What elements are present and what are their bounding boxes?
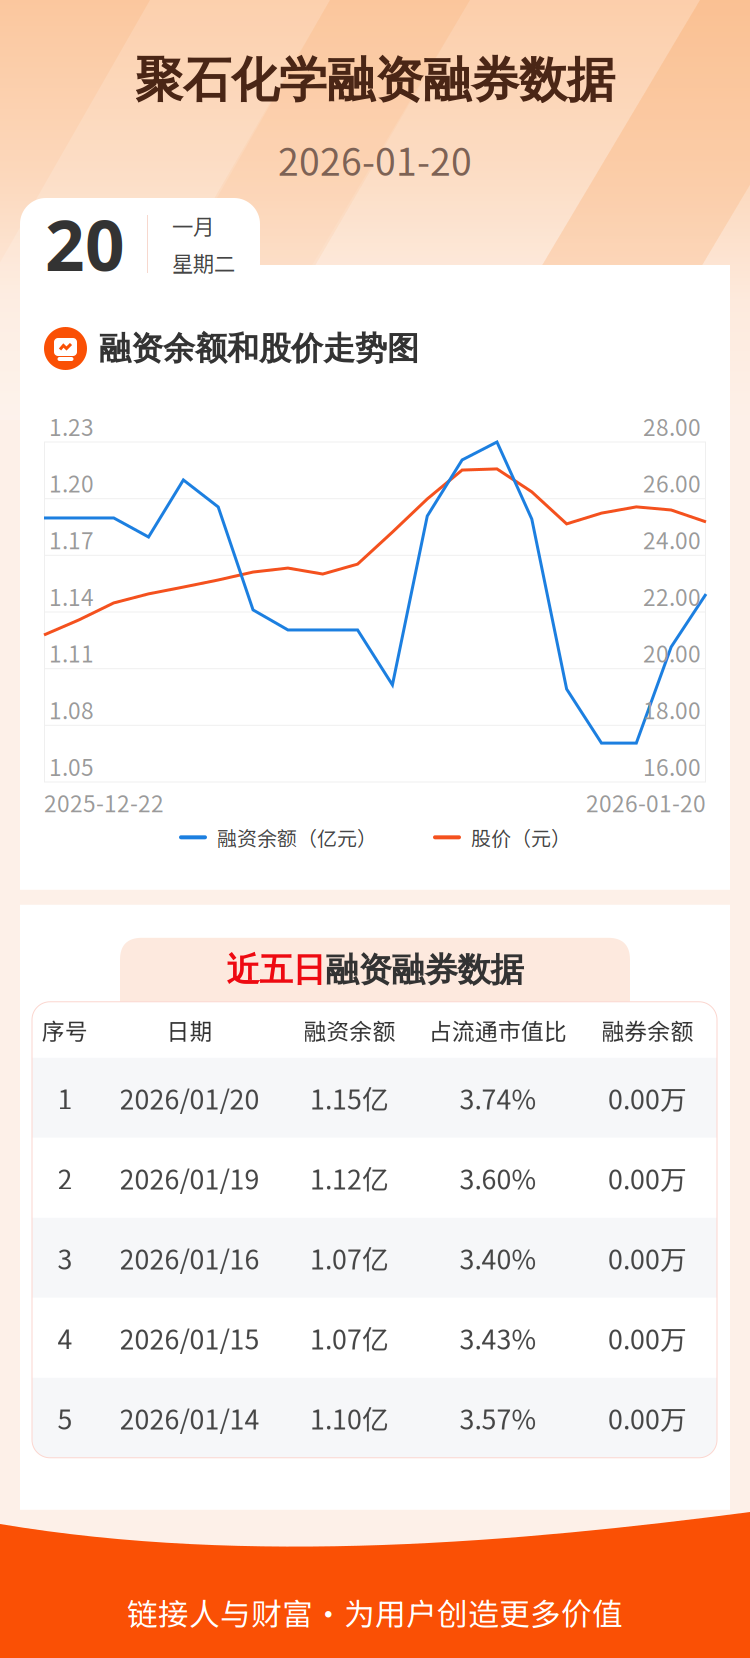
staticText: 3.40% bbox=[459, 1238, 536, 1277]
staticText: 28.00 bbox=[643, 410, 701, 442]
staticText: 日期 bbox=[166, 1013, 212, 1046]
staticText: 4 bbox=[57, 1318, 72, 1357]
staticText: 序号 bbox=[42, 1013, 88, 1046]
staticText: 聚石化学融资融券数据 bbox=[135, 50, 615, 110]
staticText: 融资余额和股价走势图 bbox=[99, 328, 419, 369]
staticText: 20.00 bbox=[643, 636, 701, 669]
staticText: 3.74% bbox=[459, 1078, 536, 1117]
staticText: 近五日 bbox=[226, 949, 325, 991]
staticText: 1 bbox=[57, 1078, 72, 1117]
staticText: 0.00万 bbox=[608, 1158, 687, 1197]
staticText: 1.08 bbox=[49, 693, 94, 726]
staticText: 1.05 bbox=[49, 750, 94, 782]
staticText: 3 bbox=[57, 1238, 72, 1277]
staticText: 融资融券数据 bbox=[325, 949, 523, 991]
staticText: 2026/01/19 bbox=[119, 1158, 259, 1197]
staticText: 股价（元） bbox=[471, 823, 571, 852]
staticText: 1.14 bbox=[49, 580, 94, 612]
staticText: 一月 bbox=[172, 210, 214, 241]
staticText: 融资余额（亿元） bbox=[217, 823, 377, 852]
staticText: 融资余额 bbox=[303, 1013, 395, 1046]
staticText: 星期二 bbox=[172, 247, 235, 278]
staticText: 1.11 bbox=[49, 636, 94, 669]
staticText: 3.43% bbox=[459, 1318, 536, 1357]
staticText: 0.00万 bbox=[608, 1238, 687, 1277]
staticText: 2026-01-20 bbox=[586, 786, 706, 819]
staticText: 3.60% bbox=[459, 1158, 536, 1197]
staticText: 1.07亿 bbox=[310, 1238, 389, 1277]
staticText: 2026-01-20 bbox=[278, 132, 472, 187]
staticText: 2026/01/15 bbox=[119, 1318, 259, 1357]
staticText: 20 bbox=[45, 197, 125, 291]
staticText: 融券余额 bbox=[601, 1013, 693, 1046]
staticText: 1.10亿 bbox=[310, 1398, 389, 1437]
staticText: 2025-12-22 bbox=[44, 786, 164, 819]
staticText: 24.00 bbox=[643, 523, 701, 556]
staticText: 1.15亿 bbox=[310, 1078, 389, 1117]
staticText: 3.57% bbox=[459, 1398, 536, 1437]
staticText: 5 bbox=[57, 1398, 72, 1437]
staticText: 2026/01/16 bbox=[119, 1238, 259, 1277]
staticText: 0.00万 bbox=[608, 1398, 687, 1437]
staticText: 18.00 bbox=[643, 693, 701, 726]
staticText: 占流通市值比 bbox=[429, 1013, 567, 1046]
staticText: 1.23 bbox=[49, 410, 94, 442]
staticText: 0.00万 bbox=[608, 1318, 687, 1357]
staticText: 16.00 bbox=[643, 750, 701, 782]
staticText: 26.00 bbox=[643, 466, 701, 499]
staticText: 2 bbox=[57, 1158, 72, 1197]
staticText: 2026/01/20 bbox=[119, 1078, 259, 1117]
staticText: 1.07亿 bbox=[310, 1318, 389, 1357]
staticText: 1.12亿 bbox=[310, 1158, 389, 1197]
staticText: 链接人与财富·为用户创造更多价值 bbox=[127, 1590, 623, 1634]
staticText: 1.17 bbox=[49, 523, 94, 556]
staticText: 2026/01/14 bbox=[119, 1398, 259, 1437]
staticText: 1.20 bbox=[49, 466, 94, 499]
staticText: 22.00 bbox=[643, 580, 701, 612]
staticText: 0.00万 bbox=[608, 1078, 687, 1117]
